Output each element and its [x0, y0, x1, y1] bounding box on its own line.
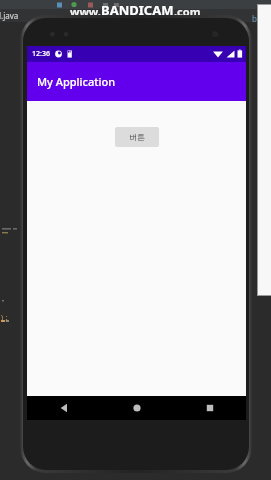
button[interactable]: Home — [100, 396, 173, 420]
staticText: 버튼 — [129, 132, 145, 142]
button[interactable]: 버튼 — [115, 127, 159, 147]
staticText: BANDICAM — [101, 1, 174, 19]
staticText: ); — [0, 313, 9, 323]
staticText: .com — [174, 4, 201, 19]
staticText: b — [252, 13, 257, 24]
staticText: 12:36 — [32, 49, 50, 59]
staticText: l.java — [0, 10, 19, 21]
staticText: My Application — [37, 74, 116, 89]
staticText: www. — [70, 4, 101, 19]
button[interactable]: Back — [27, 396, 100, 420]
button[interactable]: Recent apps — [173, 396, 246, 420]
